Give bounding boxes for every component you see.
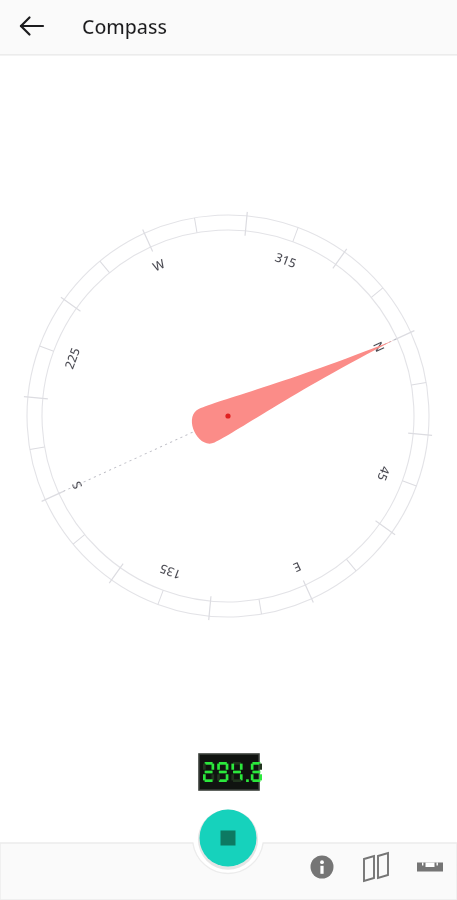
button[interactable]: Measure xyxy=(408,845,452,889)
button[interactable]: Map xyxy=(354,845,398,889)
button[interactable]: Stop xyxy=(200,810,257,867)
button[interactable]: Info xyxy=(300,845,344,889)
button[interactable]: Back xyxy=(10,4,54,48)
